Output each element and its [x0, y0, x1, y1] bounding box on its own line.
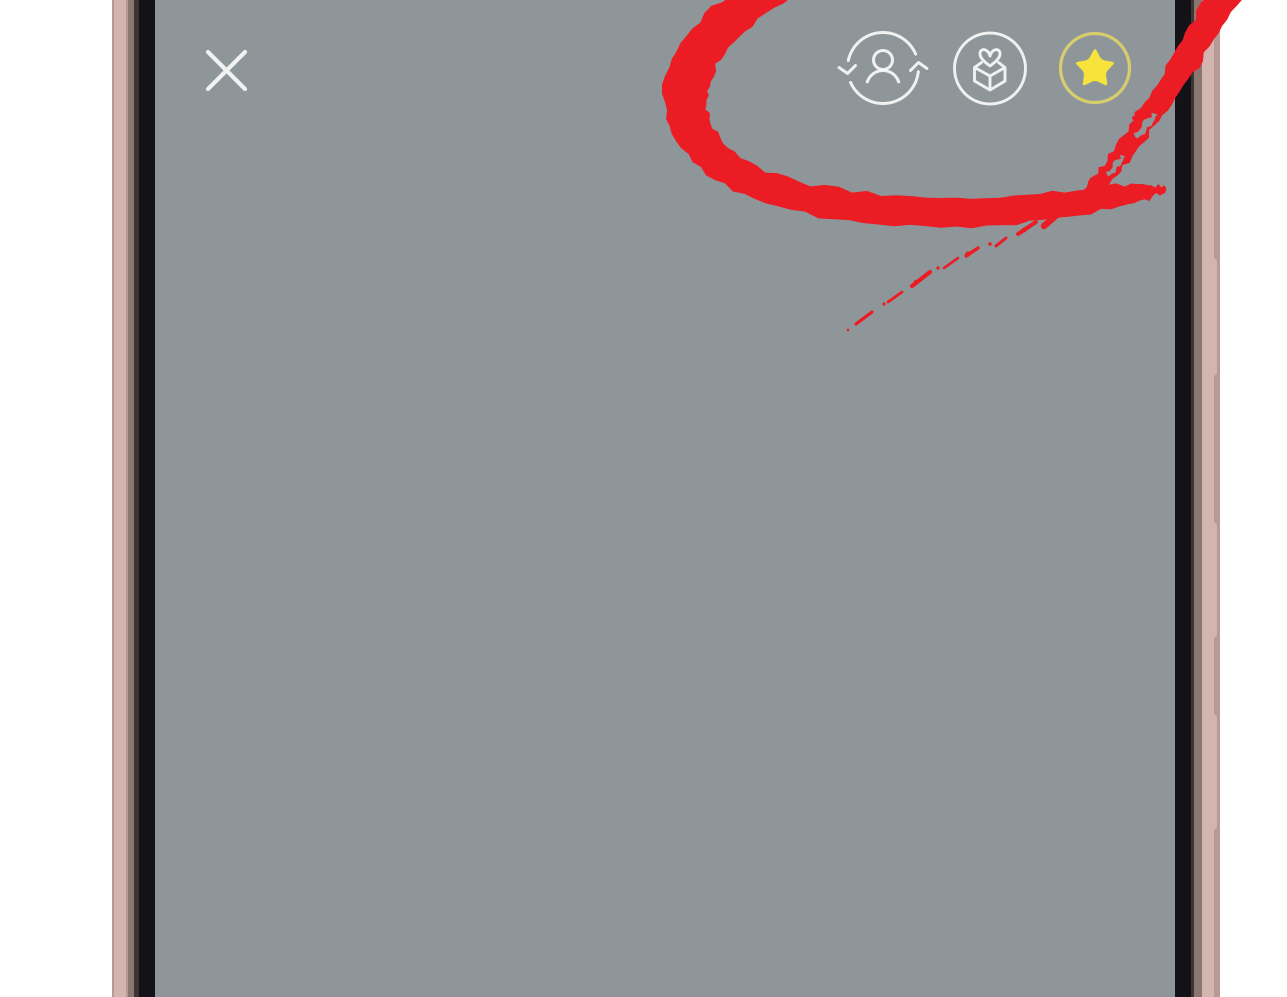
- button[interactable]: Close: [189, 33, 263, 107]
- button[interactable]: Favourites: [1054, 27, 1136, 109]
- button[interactable]: Switch account: [837, 22, 929, 114]
- button[interactable]: Wish list: [948, 26, 1032, 110]
